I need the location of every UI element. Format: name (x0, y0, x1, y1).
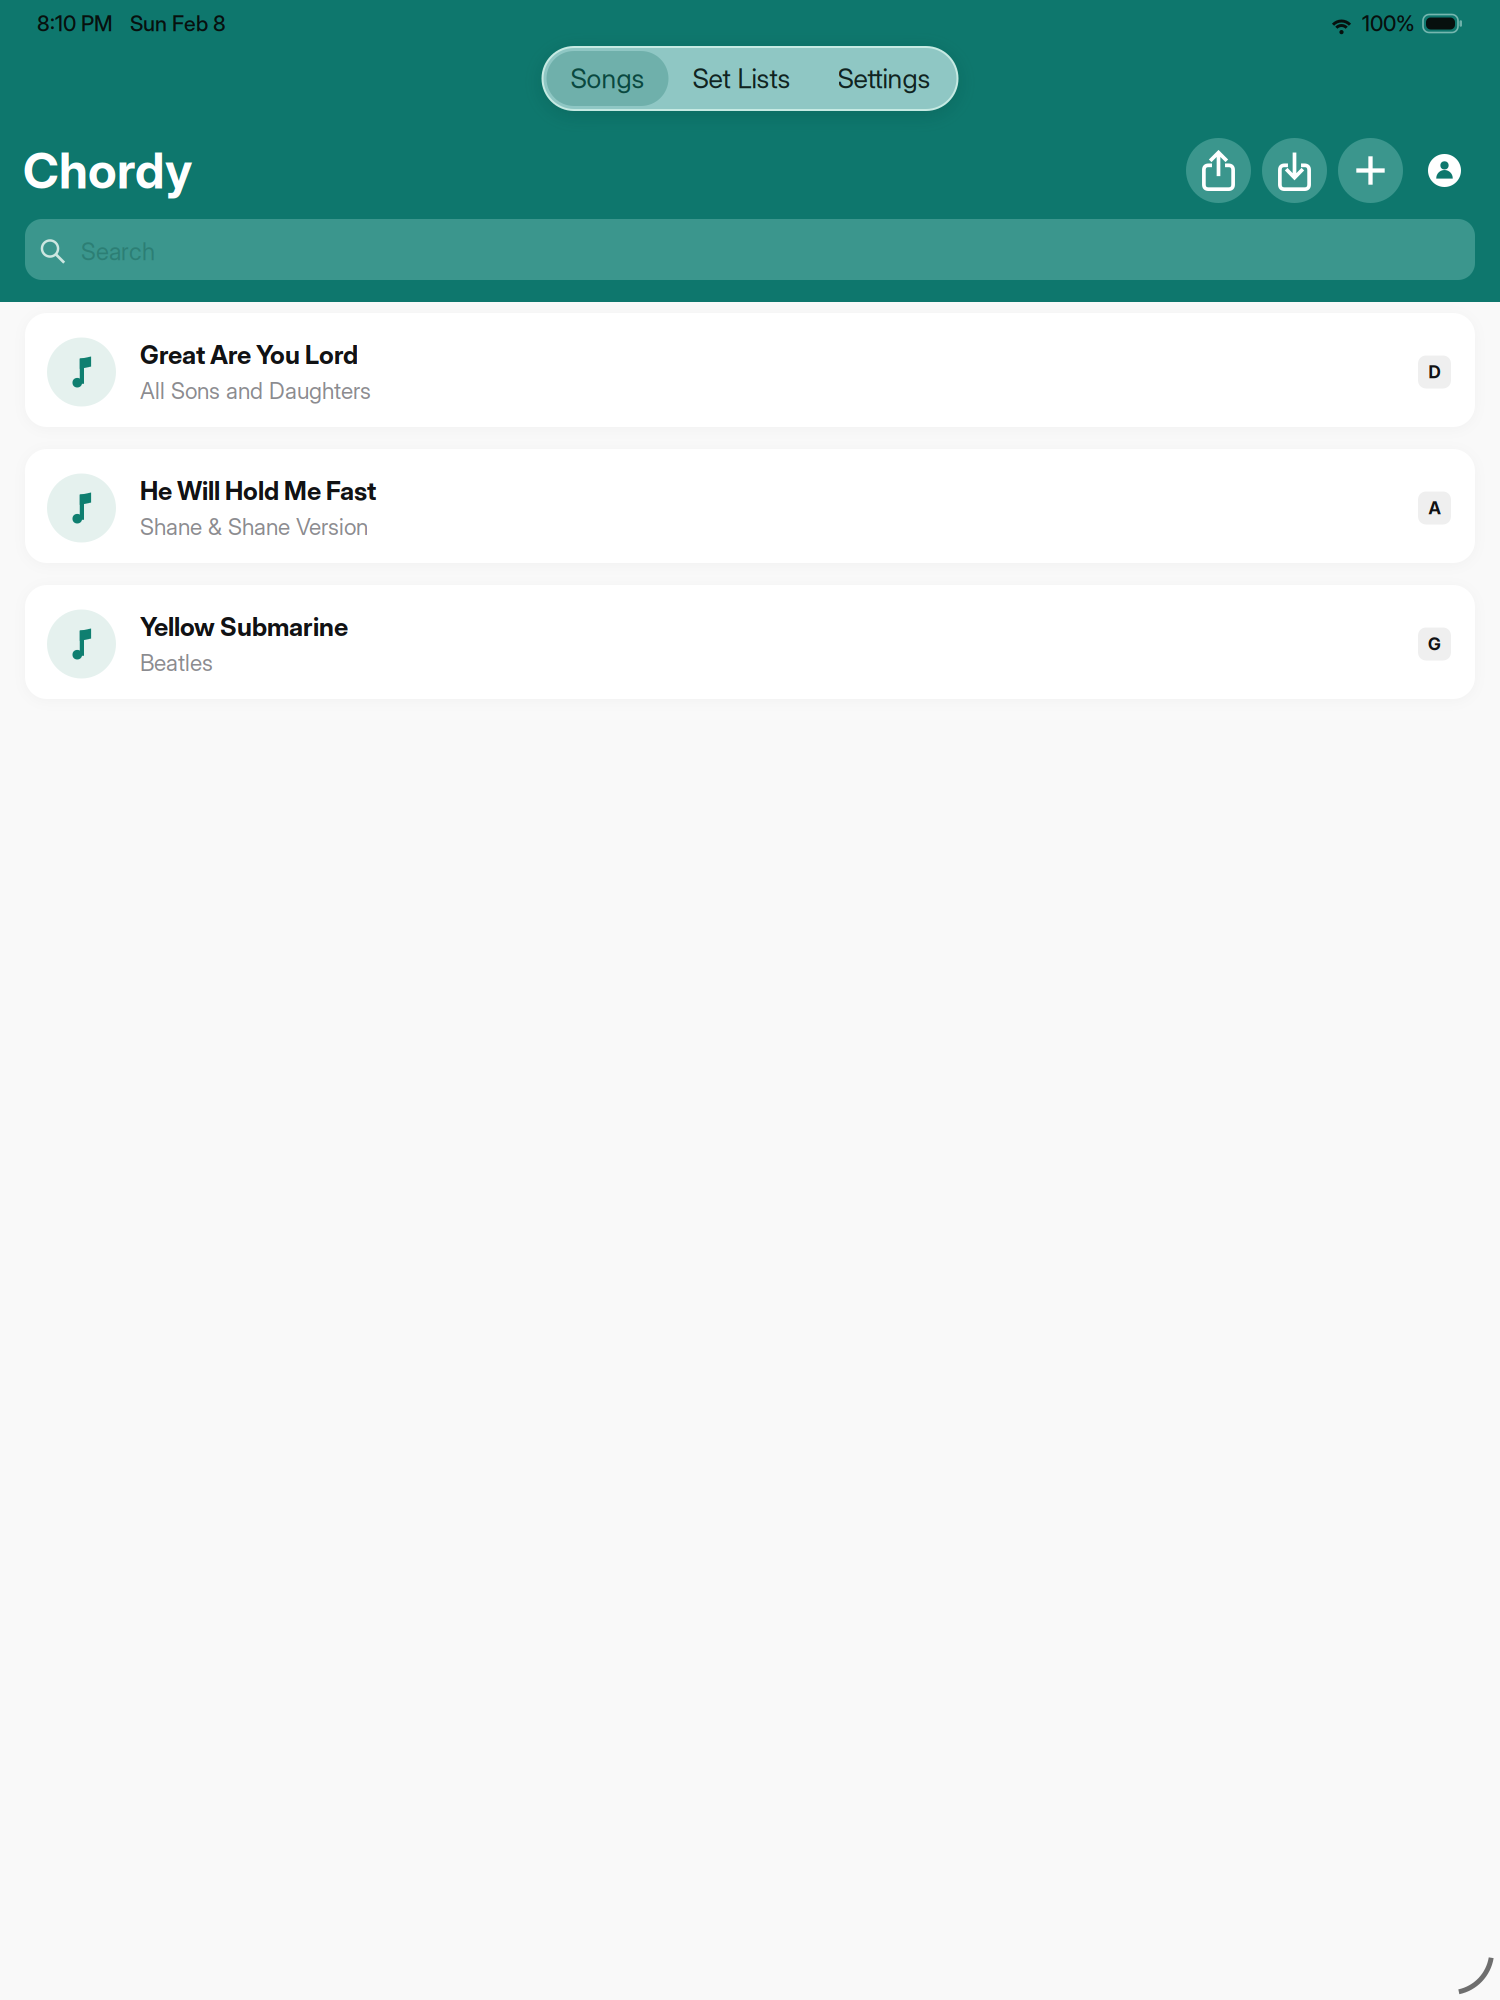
staticText: Sun Feb 8 (130, 11, 226, 36)
staticText: A (1428, 497, 1440, 518)
staticText: D (1428, 361, 1440, 382)
button[interactable]: Yellow Submarine (25, 585, 1475, 699)
button[interactable]: He Will Hold Me Fast (25, 449, 1475, 563)
button[interactable]: Settings (814, 51, 953, 106)
button[interactable]: Great Are You Lord (25, 313, 1475, 427)
staticText: 8:10 PM (37, 11, 113, 36)
staticText: Beatles (140, 649, 213, 676)
button[interactable]: Account (1403, 154, 1467, 187)
staticText: G (1428, 633, 1441, 654)
staticText: Search (81, 237, 155, 266)
staticText: All Sons and Daughters (140, 377, 371, 404)
staticText: 100% (1362, 11, 1415, 36)
staticText: Great Are You Lord (140, 339, 358, 370)
staticText: Shane & Shane Version (140, 513, 368, 540)
staticText: Set Lists (692, 62, 790, 95)
staticText: Chordy (23, 141, 192, 200)
staticText: Settings (837, 62, 930, 95)
button[interactable]: Import (1251, 138, 1327, 203)
staticText: Yellow Submarine (140, 611, 348, 642)
staticText: Songs (570, 62, 644, 95)
button[interactable]: Share (1186, 138, 1251, 203)
button[interactable]: Set Lists (668, 51, 814, 106)
button[interactable]: Add song (1327, 138, 1403, 203)
button[interactable]: Songs (546, 51, 668, 106)
staticText: He Will Hold Me Fast (140, 475, 376, 506)
